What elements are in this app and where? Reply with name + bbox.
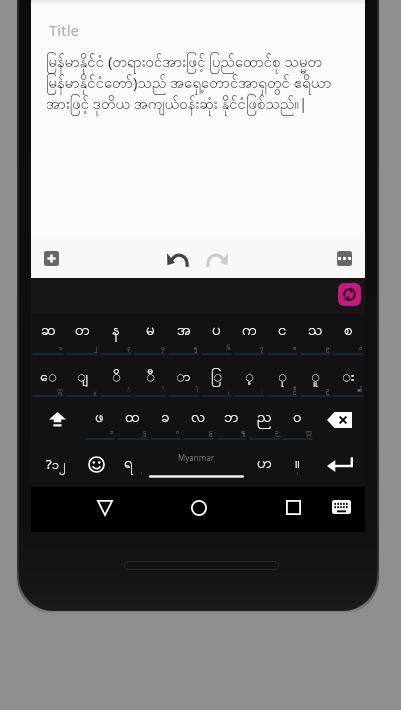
staticText: ့ bbox=[245, 367, 254, 388]
staticText: ု bbox=[278, 367, 287, 388]
staticText: ဂ bbox=[176, 428, 180, 437]
staticText: ၊ bbox=[141, 469, 142, 478]
button[interactable]: ိ bbox=[99, 355, 133, 397]
staticText: ည bbox=[257, 407, 272, 429]
button[interactable]: ပ bbox=[200, 314, 233, 355]
button[interactable]: Symbols bbox=[31, 440, 80, 487]
staticText: ဆ bbox=[41, 320, 56, 342]
button[interactable]: ခ bbox=[149, 397, 182, 440]
button[interactable]: ည bbox=[248, 397, 281, 440]
staticText: ၄ bbox=[161, 344, 165, 353]
button[interactable]: Emoji bbox=[80, 440, 112, 487]
staticText: ဝ bbox=[293, 407, 302, 429]
staticText: း bbox=[342, 367, 355, 388]
staticText: ဈ bbox=[241, 428, 246, 437]
staticText: ဥ bbox=[326, 386, 330, 395]
button[interactable]: Undo bbox=[167, 250, 188, 266]
staticText: ၁ bbox=[59, 344, 63, 353]
button[interactable]: Back bbox=[97, 500, 113, 516]
staticText: ွ bbox=[93, 386, 97, 395]
staticText: အ bbox=[177, 320, 191, 342]
staticText: န bbox=[112, 320, 120, 342]
staticText: ဖ bbox=[95, 407, 104, 429]
button[interactable]: တ bbox=[65, 314, 99, 355]
staticText: ဣ bbox=[306, 428, 312, 437]
button[interactable]: Home bbox=[191, 500, 207, 516]
button[interactable]: ာ bbox=[167, 355, 200, 397]
button[interactable]: Enter bbox=[314, 440, 365, 487]
staticText: က bbox=[242, 320, 257, 342]
staticText: Myanmar bbox=[178, 452, 215, 463]
button[interactable]: Shift bbox=[31, 397, 83, 440]
staticText: င bbox=[278, 320, 287, 342]
button[interactable]: ျ bbox=[65, 355, 99, 397]
button[interactable]: Recents bbox=[286, 500, 301, 515]
button[interactable]: ဘ bbox=[215, 397, 248, 440]
staticText: ဗ bbox=[110, 428, 114, 437]
staticText: ္ bbox=[260, 386, 264, 395]
button[interactable]: ။ bbox=[281, 440, 314, 487]
button[interactable]: စ bbox=[332, 314, 365, 355]
button[interactable]: န bbox=[99, 314, 133, 355]
button[interactable]: ု bbox=[266, 355, 299, 397]
staticText: ဲ bbox=[161, 386, 165, 395]
button[interactable]: ရ bbox=[112, 440, 145, 487]
button[interactable]: ဆ bbox=[31, 314, 65, 355]
staticText: ?၁၂ bbox=[46, 455, 66, 475]
button[interactable]: ူ bbox=[299, 355, 332, 397]
button[interactable]: ေ bbox=[31, 355, 65, 397]
staticText: ၊ bbox=[297, 469, 298, 478]
staticText: ထ bbox=[125, 407, 140, 429]
staticText: မ bbox=[146, 320, 155, 342]
button[interactable]: င bbox=[266, 314, 299, 355]
staticText: လ bbox=[191, 407, 206, 429]
staticText: ေ bbox=[40, 367, 57, 388]
button[interactable]: လ bbox=[182, 397, 215, 440]
staticText: ဌ bbox=[143, 428, 147, 437]
button[interactable]: ဝ bbox=[281, 397, 314, 440]
staticText: ူ bbox=[311, 367, 320, 388]
button[interactable]: Insert bbox=[44, 251, 59, 266]
button[interactable]: က bbox=[233, 314, 266, 355]
button[interactable]: ့ bbox=[233, 355, 266, 397]
staticText: ၏ bbox=[357, 386, 363, 395]
button[interactable]: း bbox=[332, 355, 365, 397]
button[interactable]: မ bbox=[133, 314, 167, 355]
button[interactable]: More options bbox=[337, 251, 352, 266]
staticText: ံ bbox=[127, 386, 131, 395]
staticText: ဣ bbox=[57, 386, 63, 395]
button[interactable]: Space bbox=[145, 440, 248, 487]
staticText: စ bbox=[344, 320, 353, 342]
staticText: တ bbox=[75, 320, 90, 342]
staticText: ၅ bbox=[194, 344, 198, 353]
button[interactable]: Backspace bbox=[314, 397, 365, 440]
button[interactable]: Switch keyboard bbox=[332, 500, 351, 514]
button[interactable]: ြ bbox=[200, 355, 233, 397]
staticText: ၀ bbox=[359, 344, 363, 353]
staticText: ၆ bbox=[227, 344, 231, 353]
button[interactable]: သ bbox=[299, 314, 332, 355]
staticText: ၈ bbox=[293, 344, 297, 353]
staticText: ၉ bbox=[326, 344, 330, 353]
button[interactable]: ထ bbox=[116, 397, 149, 440]
staticText: ီ bbox=[146, 367, 155, 388]
button[interactable]: Redo bbox=[207, 250, 228, 266]
staticText: ရ bbox=[124, 453, 133, 475]
staticText: Title bbox=[49, 20, 79, 40]
staticText: မြန်မာနိုင်ငံ (တရားဝင်အားဖြင့် ပြည်ထောင်… bbox=[46, 51, 332, 116]
button[interactable]: အ bbox=[167, 314, 200, 355]
staticText: ဉ bbox=[275, 428, 279, 437]
button[interactable]: Change keyboard bbox=[338, 283, 361, 306]
staticText: ြ bbox=[211, 367, 223, 388]
staticText: ဘ bbox=[224, 407, 239, 429]
button[interactable]: ီ bbox=[133, 355, 167, 397]
button[interactable]: ဟ bbox=[248, 440, 281, 487]
staticText: ိ bbox=[112, 367, 121, 388]
staticText: ၂ bbox=[94, 344, 97, 353]
staticText: ။ bbox=[295, 453, 300, 475]
staticText: ျ bbox=[77, 367, 88, 388]
staticText: ၇ bbox=[260, 344, 264, 353]
button[interactable]: ဖ bbox=[83, 397, 116, 440]
staticText: ဠ bbox=[209, 428, 213, 437]
staticText: ှ bbox=[227, 386, 231, 395]
